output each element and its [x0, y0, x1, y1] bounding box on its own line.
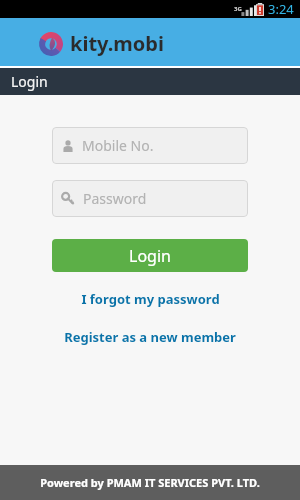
staticText: 3G — [234, 5, 242, 13]
staticText: kity.mobi — [70, 30, 164, 57]
staticText: Password — [83, 189, 147, 208]
button[interactable]: Mobile No. — [52, 127, 248, 164]
button[interactable]: Password — [52, 180, 248, 217]
button[interactable]: Register as a new member — [0, 328, 300, 346]
staticText: I forgot my password — [81, 290, 220, 308]
button[interactable]: I forgot my password — [0, 290, 300, 308]
staticText: Register as a new member — [64, 328, 236, 346]
staticText: Mobile No. — [82, 136, 154, 155]
staticText: Login — [11, 72, 48, 91]
button[interactable]: Login — [52, 239, 248, 272]
staticText: Login — [129, 245, 171, 267]
staticText: 3:24 — [268, 0, 294, 18]
staticText: Powered by PMAM IT SERVICES PVT. LTD. — [40, 475, 260, 490]
